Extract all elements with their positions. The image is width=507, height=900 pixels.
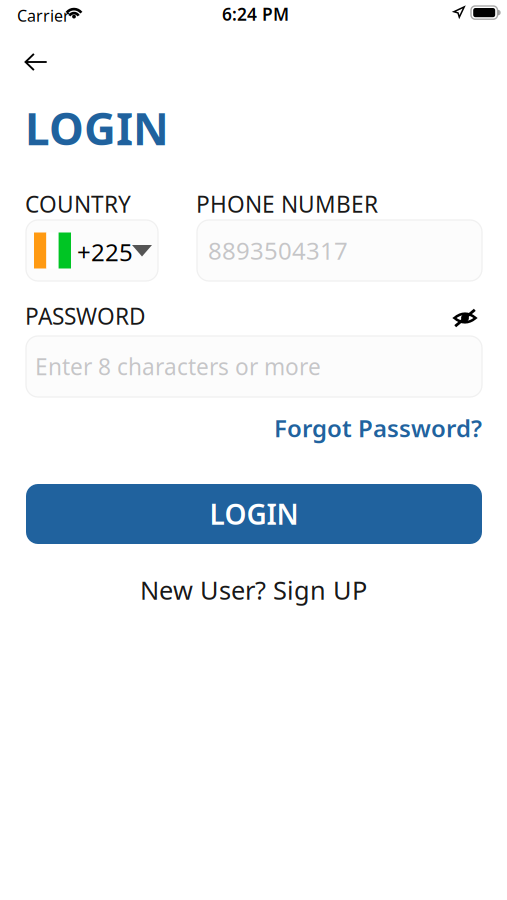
button[interactable]: Forgot Password?	[282, 412, 482, 444]
staticText: Carrier	[17, 5, 70, 26]
button[interactable]: Show password	[447, 302, 483, 334]
staticText: PASSWORD	[25, 301, 146, 331]
button[interactable]: Enter 8 characters or more	[26, 336, 482, 397]
staticText: 6:24 PM	[222, 2, 289, 25]
staticText: Forgot Password?	[274, 412, 482, 444]
button[interactable]: Select country code	[26, 220, 158, 281]
staticText: LOGIN	[25, 99, 169, 157]
staticText: Enter 8 characters or more	[35, 351, 321, 381]
button[interactable]: New User? Sign UP	[113, 573, 393, 607]
button[interactable]: Back	[0, 38, 70, 86]
staticText: +225	[77, 236, 133, 268]
staticText: 8893504317	[208, 235, 348, 266]
staticText: New User? Sign UP	[140, 573, 367, 607]
staticText: LOGIN	[209, 495, 298, 533]
button[interactable]: LOGIN	[26, 484, 482, 544]
staticText: PHONE NUMBER	[196, 189, 378, 219]
button[interactable]: 8893504317	[197, 220, 482, 281]
staticText: COUNTRY	[25, 189, 131, 219]
